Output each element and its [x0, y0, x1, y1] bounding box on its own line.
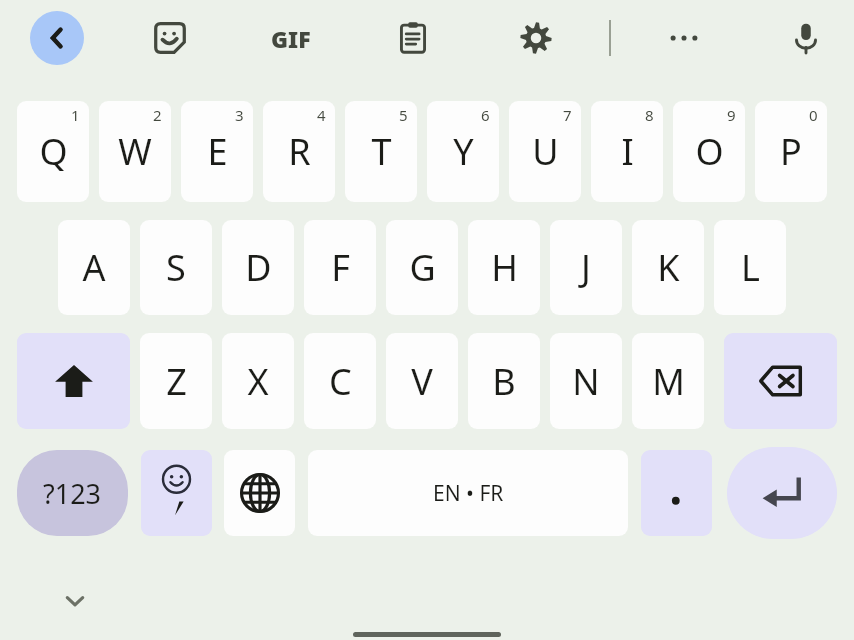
button[interactable]: ?123 [17, 450, 128, 536]
button[interactable]: EN • FR [308, 450, 628, 536]
staticText: I [621, 127, 634, 176]
button[interactable]: Clipboard [388, 13, 438, 63]
button[interactable]: Voice input [781, 13, 831, 63]
staticText: H [491, 243, 518, 292]
button[interactable]: Shift [17, 333, 130, 429]
button[interactable]: O [673, 101, 745, 202]
staticText: 6 [481, 105, 490, 125]
button[interactable]: F [304, 220, 376, 315]
button[interactable]: Settings [511, 13, 561, 63]
button[interactable]: Back [30, 11, 84, 65]
button[interactable]: G [386, 220, 458, 315]
staticText: O [695, 127, 724, 176]
staticText: X [247, 357, 269, 406]
button[interactable]: H [468, 220, 540, 315]
button[interactable]: I [591, 101, 663, 202]
button[interactable]: Enter [727, 447, 837, 539]
staticText: 3 [235, 105, 244, 125]
button[interactable]: T [345, 101, 417, 202]
staticText: N [572, 357, 600, 406]
button[interactable]: L [714, 220, 786, 315]
button[interactable]: K [632, 220, 704, 315]
staticText: G [409, 243, 436, 292]
button[interactable]: GIF [262, 13, 320, 63]
button[interactable]: Period [641, 450, 712, 536]
button[interactable]: J [550, 220, 622, 315]
staticText: 5 [399, 105, 408, 125]
button[interactable]: D [222, 220, 294, 315]
staticText: F [331, 243, 350, 292]
button[interactable]: More options [659, 13, 709, 63]
button[interactable]: Y [427, 101, 499, 202]
button[interactable]: W [99, 101, 171, 202]
button[interactable]: C [304, 333, 376, 429]
staticText: U [532, 127, 559, 176]
button[interactable]: B [468, 333, 540, 429]
button[interactable]: N [550, 333, 622, 429]
button[interactable]: Backspace [724, 333, 837, 429]
button[interactable]: Hide keyboard [50, 578, 100, 624]
staticText: B [492, 357, 516, 406]
staticText: 0 [809, 105, 818, 125]
staticText: 7 [563, 105, 572, 125]
button[interactable]: Emoji [141, 450, 212, 536]
staticText: 1 [71, 105, 80, 125]
staticText: 4 [317, 105, 326, 125]
button[interactable]: E [181, 101, 253, 202]
staticText: C [329, 357, 352, 406]
staticText: ?123 [43, 475, 102, 512]
staticText: A [82, 243, 106, 292]
staticText: L [741, 243, 760, 292]
staticText: 2 [153, 105, 162, 125]
button[interactable]: R [263, 101, 335, 202]
staticText: J [581, 243, 591, 292]
staticText: 9 [727, 105, 736, 125]
button[interactable]: A [58, 220, 130, 315]
staticText: GIF [271, 23, 311, 54]
staticText: E [207, 127, 228, 176]
button[interactable]: Stickers [145, 13, 195, 63]
staticText: D [245, 243, 272, 292]
button[interactable]: X [222, 333, 294, 429]
button[interactable]: P [755, 101, 827, 202]
staticText: K [657, 243, 680, 292]
staticText: V [411, 357, 433, 406]
button[interactable]: U [509, 101, 581, 202]
staticText: M [652, 357, 685, 406]
button[interactable]: M [632, 333, 704, 429]
staticText: Z [166, 357, 187, 406]
button[interactable]: V [386, 333, 458, 429]
staticText: Y [453, 127, 474, 176]
staticText: S [166, 243, 186, 292]
staticText: W [118, 127, 152, 176]
button[interactable]: Change language [224, 450, 295, 536]
staticText: 8 [645, 105, 654, 125]
staticText: P [780, 127, 802, 176]
button[interactable]: Z [140, 333, 212, 429]
staticText: T [371, 127, 392, 176]
button[interactable]: Q [17, 101, 89, 202]
staticText: R [288, 127, 311, 176]
button[interactable]: S [140, 220, 212, 315]
staticText: EN • FR [433, 479, 504, 508]
staticText: Q [39, 127, 68, 176]
